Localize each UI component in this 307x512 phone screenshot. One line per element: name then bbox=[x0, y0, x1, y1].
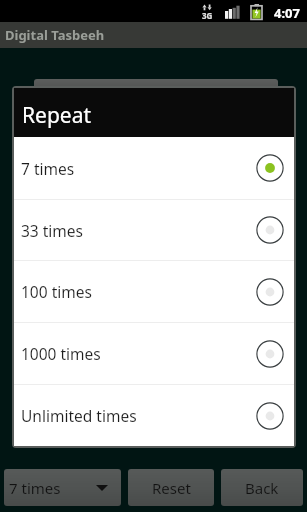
staticText: 7 times bbox=[21, 158, 75, 179]
staticText: 3G bbox=[202, 10, 213, 21]
staticText: Reset bbox=[152, 478, 191, 498]
button[interactable]: 7 times bbox=[4, 469, 121, 506]
staticText: 100 times bbox=[21, 281, 92, 302]
other: Open dropdown bbox=[96, 485, 108, 491]
button[interactable]: 100 times bbox=[14, 261, 294, 322]
staticText: 7 times bbox=[9, 478, 61, 498]
staticText: Unlimited times bbox=[21, 405, 137, 426]
staticText: Repeat bbox=[22, 101, 92, 130]
button[interactable]: 33 times bbox=[14, 200, 294, 260]
button[interactable]: 7 times bbox=[14, 137, 294, 199]
button[interactable]: Unlimited times bbox=[14, 385, 294, 446]
staticText: 4:07 bbox=[274, 4, 300, 22]
button[interactable]: 1000 times bbox=[14, 323, 294, 384]
button[interactable]: Reset bbox=[128, 469, 214, 506]
staticText: Back bbox=[245, 478, 279, 498]
button[interactable]: Back bbox=[221, 469, 303, 506]
staticText: 33 times bbox=[21, 220, 84, 241]
staticText: 1000 times bbox=[21, 343, 101, 364]
staticText: Digital Tasbeeh bbox=[5, 26, 105, 44]
